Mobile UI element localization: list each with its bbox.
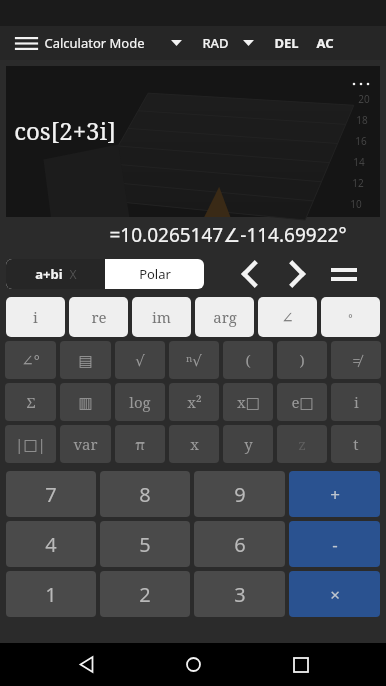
button[interactable]: re [69, 297, 128, 337]
staticText: ( [245, 350, 251, 370]
button[interactable]: arg [195, 297, 254, 337]
button[interactable]: DEL [274, 34, 299, 52]
button[interactable]: ) [277, 341, 327, 379]
staticText: 7 [45, 481, 57, 508]
staticText: 4 [45, 531, 57, 558]
button[interactable]: Σ [5, 383, 56, 421]
button[interactable]: RAD [202, 34, 260, 52]
button[interactable]: Previous [232, 257, 266, 291]
button[interactable]: π [115, 425, 165, 463]
staticText: 16 [355, 134, 367, 148]
staticText: x□ [237, 392, 260, 412]
button[interactable]: |□| [5, 425, 56, 463]
staticText: 8 [139, 481, 151, 508]
button[interactable]: i [331, 383, 381, 421]
button[interactable]: - [289, 521, 380, 567]
button[interactable]: 1 [6, 571, 96, 617]
button[interactable]: More options [348, 72, 372, 96]
button[interactable]: x² [169, 383, 219, 421]
button[interactable]: Home [171, 643, 215, 686]
staticText: - [332, 533, 338, 556]
staticText: DEL [274, 34, 299, 52]
button[interactable]: e□ [277, 383, 327, 421]
button[interactable]: Menu [10, 27, 42, 59]
staticText: x [190, 434, 199, 454]
button[interactable]: 9 [194, 471, 285, 517]
button[interactable]: ▥ [60, 383, 111, 421]
staticText: π [135, 434, 145, 454]
staticText: ° [348, 310, 353, 325]
staticText: z [298, 434, 306, 454]
button[interactable]: ∠° [5, 341, 56, 379]
button[interactable]: Calculator Mode [42, 34, 188, 52]
staticText: Calculator Mode [44, 34, 145, 52]
staticText: ▥ [78, 394, 93, 411]
button[interactable]: 8 [100, 471, 190, 517]
button[interactable]: Next [280, 257, 314, 291]
button[interactable]: √ [115, 341, 165, 379]
staticText: =10.0265147∠-114.69922° [109, 222, 347, 248]
button[interactable]: ⁿ√ [169, 341, 219, 379]
button[interactable]: log [115, 383, 165, 421]
button[interactable]: i [6, 297, 65, 337]
button[interactable]: Equals [324, 254, 364, 294]
staticText: 10 [350, 197, 362, 211]
staticText: Polar [139, 265, 171, 283]
staticText: 18 [356, 113, 368, 127]
button[interactable]: ≠ [331, 341, 381, 379]
button[interactable]: AC [316, 34, 334, 52]
button[interactable]: Back [64, 643, 108, 686]
staticText: x² [187, 392, 202, 412]
button[interactable]: 5 [100, 521, 190, 567]
button[interactable]: im [132, 297, 191, 337]
staticText: × [330, 583, 340, 606]
staticText: AC [316, 34, 334, 52]
staticText: ) [299, 350, 305, 370]
staticText: y [244, 434, 253, 454]
staticText: a+bi [35, 265, 63, 283]
button[interactable]: x□ [223, 383, 273, 421]
staticText: ⁿ√ [186, 350, 202, 370]
staticText: |□| [15, 434, 46, 454]
staticText: RAD [202, 34, 229, 52]
button[interactable]: y [223, 425, 273, 463]
staticText: log [129, 392, 151, 412]
staticText: ∠ [281, 309, 294, 326]
button[interactable]: 20 [6, 66, 380, 217]
button[interactable]: var [60, 425, 111, 463]
staticText: re [91, 307, 107, 327]
staticText: im [152, 307, 171, 327]
staticText: 14 [353, 155, 365, 169]
button[interactable]: t [331, 425, 381, 463]
button[interactable]: + [289, 471, 380, 517]
staticText: 2 [139, 581, 151, 608]
button[interactable]: ( [223, 341, 273, 379]
staticText: 3 [234, 581, 246, 608]
button[interactable]: Recents [279, 643, 323, 686]
staticText: cos[2+3i] [14, 114, 116, 147]
staticText: var [73, 434, 98, 454]
staticText: 20 [358, 92, 370, 106]
staticText: 5 [139, 531, 151, 558]
staticText: e□ [291, 392, 314, 412]
staticText: Σ [26, 392, 36, 412]
button[interactable]: 3 [194, 571, 285, 617]
staticText: 9 [234, 481, 246, 508]
button[interactable]: × [289, 571, 380, 617]
staticText: ▤ [78, 352, 93, 369]
staticText: t [353, 434, 359, 454]
button[interactable]: 6 [194, 521, 285, 567]
button[interactable]: 2 [100, 571, 190, 617]
button[interactable]: ° [321, 297, 380, 337]
button[interactable]: 4 [6, 521, 96, 567]
button[interactable]: a+bi [6, 259, 105, 289]
staticText: X [63, 266, 77, 282]
staticText: 12 [352, 176, 364, 190]
button[interactable]: ▤ [60, 341, 111, 379]
button[interactable]: x [169, 425, 219, 463]
staticText: ≠ [352, 350, 361, 370]
button[interactable]: 7 [6, 471, 96, 517]
button[interactable]: ∠ [258, 297, 317, 337]
button[interactable]: Polar [105, 259, 204, 289]
